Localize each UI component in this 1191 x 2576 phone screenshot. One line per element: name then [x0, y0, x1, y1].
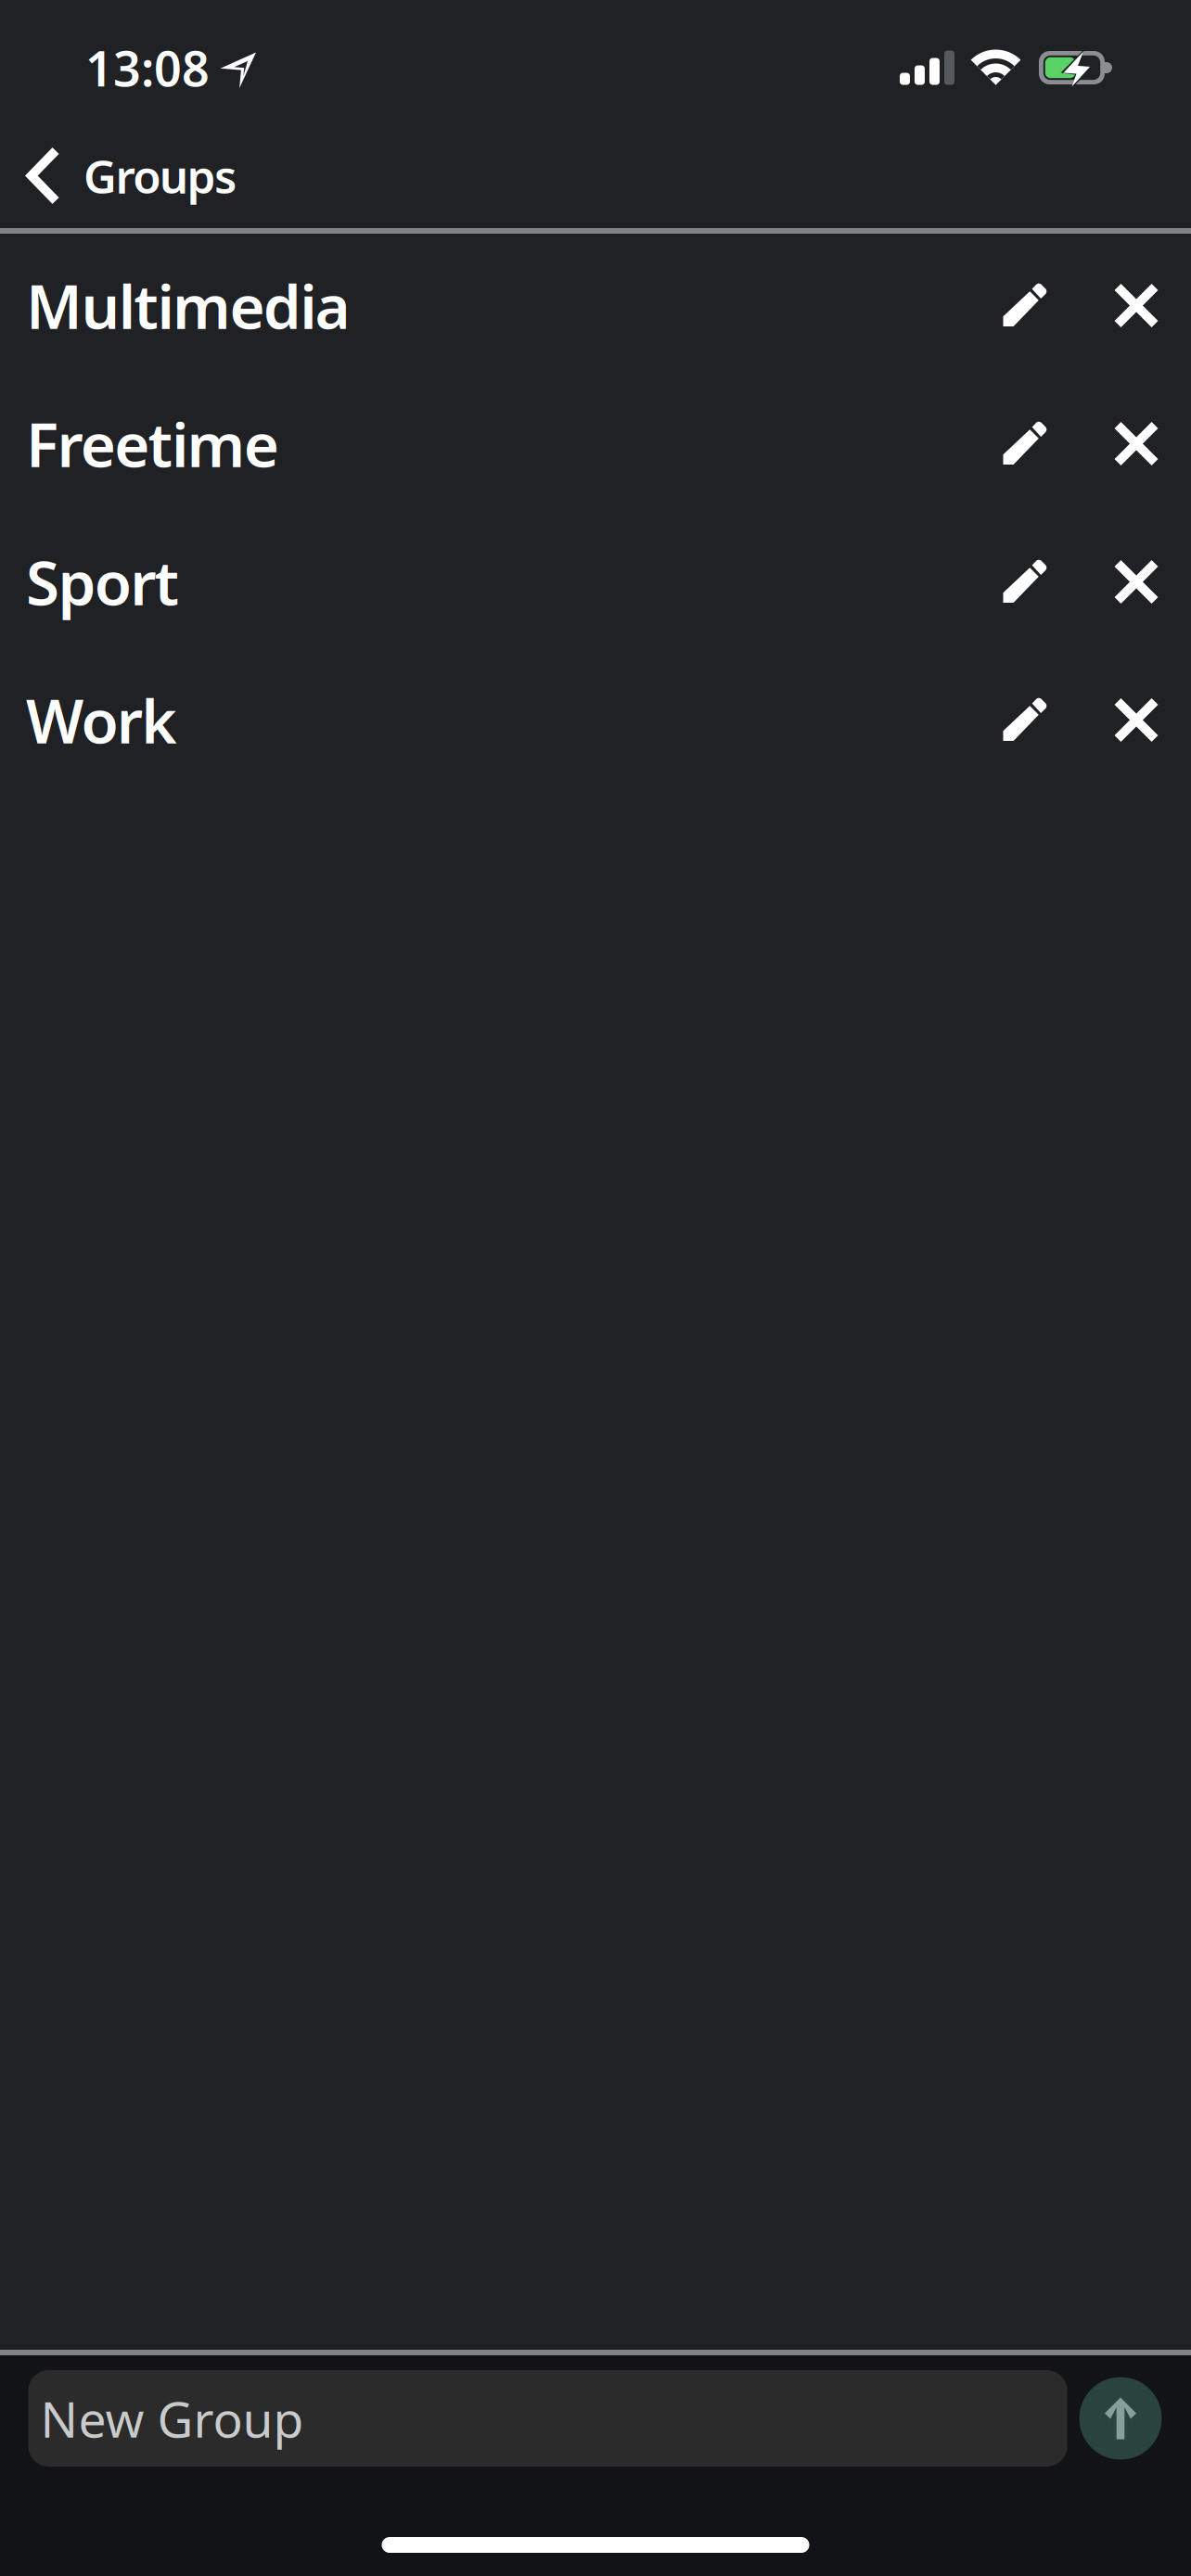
button[interactable]: Freetime: [26, 372, 712, 510]
button[interactable]: Delete Work: [1091, 654, 1180, 780]
staticText: Groups: [83, 145, 237, 206]
button[interactable]: Edit Multimedia: [961, 239, 1091, 366]
button[interactable]: Work: [26, 648, 712, 786]
button[interactable]: Add group: [1079, 2377, 1162, 2460]
button[interactable]: Multimedia: [26, 234, 712, 372]
button[interactable]: Edit Work: [961, 654, 1091, 781]
staticText: Multimedia: [26, 265, 350, 346]
button[interactable]: Edit Sport: [961, 516, 1091, 643]
button[interactable]: Groups: [0, 111, 259, 228]
button[interactable]: Sport: [26, 510, 712, 648]
button[interactable]: Delete Sport: [1091, 516, 1180, 642]
staticText: Sport: [26, 542, 180, 622]
staticText: 13:08: [85, 36, 210, 100]
button[interactable]: Edit Freetime: [961, 377, 1091, 504]
button[interactable]: Delete Freetime: [1091, 378, 1180, 504]
staticText: Freetime: [26, 403, 279, 484]
staticText: New Group: [40, 2386, 304, 2451]
button[interactable]: Delete Multimedia: [1091, 240, 1180, 366]
staticText: Work: [26, 680, 176, 760]
button[interactable]: New Group: [28, 2370, 1067, 2467]
